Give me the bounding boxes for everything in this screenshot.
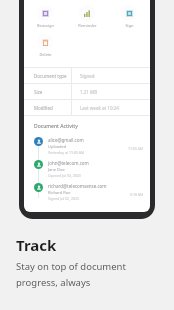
- button[interactable]: Delete: [24, 31, 66, 60]
- staticText: Richard Roe: [48, 190, 71, 195]
- staticText: Size: [34, 89, 43, 95]
- staticText: Last week at 10:24: [80, 105, 119, 111]
- staticText: Track: [16, 235, 57, 255]
- button[interactable]: Document type: [24, 68, 150, 83]
- button[interactable]: john@telecom.com: [24, 158, 150, 181]
- staticText: 11:05 AM: [128, 146, 144, 151]
- button[interactable]: Modified: [24, 100, 150, 115]
- staticText: richard@telecomsense.com: [48, 183, 107, 189]
- staticText: Reassign: [37, 23, 54, 28]
- button[interactable]: Reminder: [66, 2, 108, 31]
- staticText: Yesterday at 11:05 AM: [48, 150, 85, 155]
- button[interactable]: Reassign: [24, 2, 66, 31]
- staticText: Stay on top of document: [16, 260, 126, 273]
- staticText: Signed: [80, 73, 95, 79]
- staticText: 1.21 MB: [80, 89, 98, 95]
- button[interactable]: Size: [24, 84, 150, 99]
- staticText: alice@gmail.com: [48, 137, 84, 143]
- staticText: Opened Jul 04, 2023: [48, 173, 81, 178]
- staticText: progress, always: [16, 276, 91, 289]
- staticText: Jane Doe: [48, 167, 65, 172]
- staticText: Document type: [34, 73, 67, 79]
- button[interactable]: alice@gmail.com: [24, 135, 150, 158]
- staticText: Reminder: [78, 23, 97, 28]
- staticText: Signed Jul 02, 2023: [48, 196, 79, 201]
- staticText: 9:18 AM: [130, 192, 144, 197]
- staticText: Uploaded: [48, 144, 67, 149]
- button[interactable]: richard@telecomsense.com: [24, 181, 150, 204]
- staticText: Document Activity: [34, 123, 78, 130]
- staticText: Sign: [125, 23, 134, 28]
- staticText: john@telecom.com: [48, 160, 89, 166]
- staticText: Modified: [34, 105, 53, 111]
- button[interactable]: Sign: [108, 2, 150, 31]
- staticText: Delete: [39, 52, 52, 57]
